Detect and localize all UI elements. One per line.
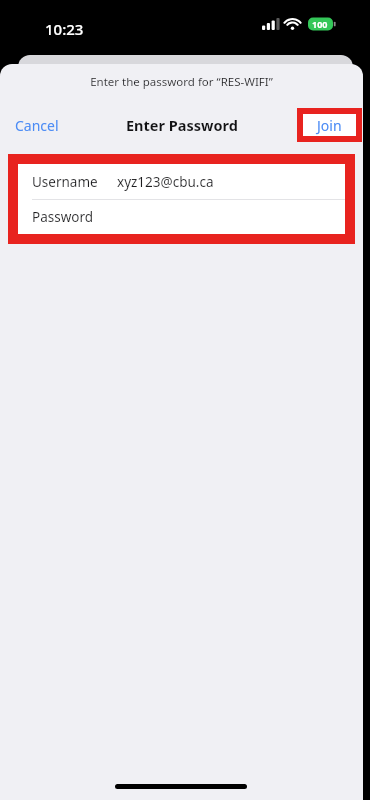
staticText: Cancel [15,116,59,135]
staticText: Username [32,173,98,191]
staticText: Enter Password [126,115,238,135]
staticText: Password [32,208,94,226]
staticText: Join [317,116,342,135]
button[interactable]: Username [18,164,345,199]
button[interactable]: Join [303,114,356,136]
staticText: 100 [312,18,328,30]
staticText: Enter the password for “RES-WIFI” [90,74,273,90]
staticText: 10:23 [45,19,84,39]
staticText: xyz123@cbu.ca [117,173,214,191]
button[interactable]: Cancel [8,110,66,141]
button[interactable]: Password [18,200,345,234]
